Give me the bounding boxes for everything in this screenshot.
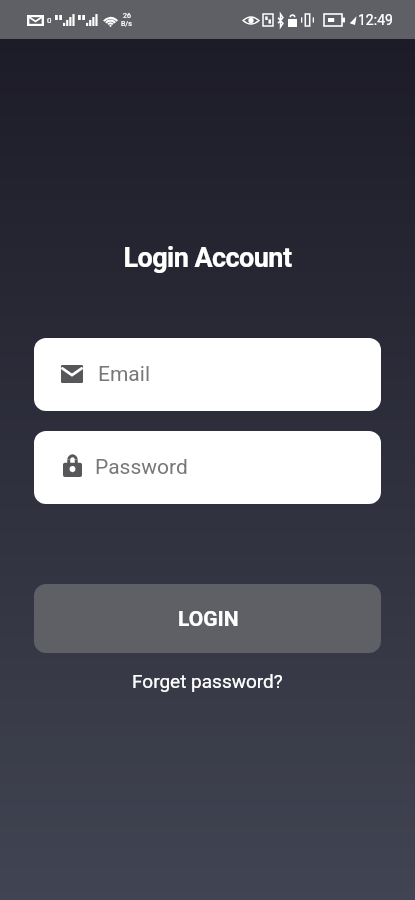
staticText: 26	[123, 12, 131, 20]
staticText: Forget password?	[132, 670, 283, 692]
staticText: Password	[95, 455, 188, 480]
staticText: LOGIN	[178, 607, 239, 632]
staticText: 12:49	[358, 12, 393, 28]
button[interactable]: Email input field	[34, 338, 381, 411]
button[interactable]: Forget password?	[122, 665, 293, 697]
staticText: Email	[98, 362, 150, 387]
staticText: Login Account	[0, 242, 415, 274]
staticText: 0	[47, 16, 52, 25]
button[interactable]: Password input field	[34, 431, 381, 504]
button[interactable]: LOGIN	[34, 584, 381, 653]
staticText: B/s	[121, 20, 132, 28]
